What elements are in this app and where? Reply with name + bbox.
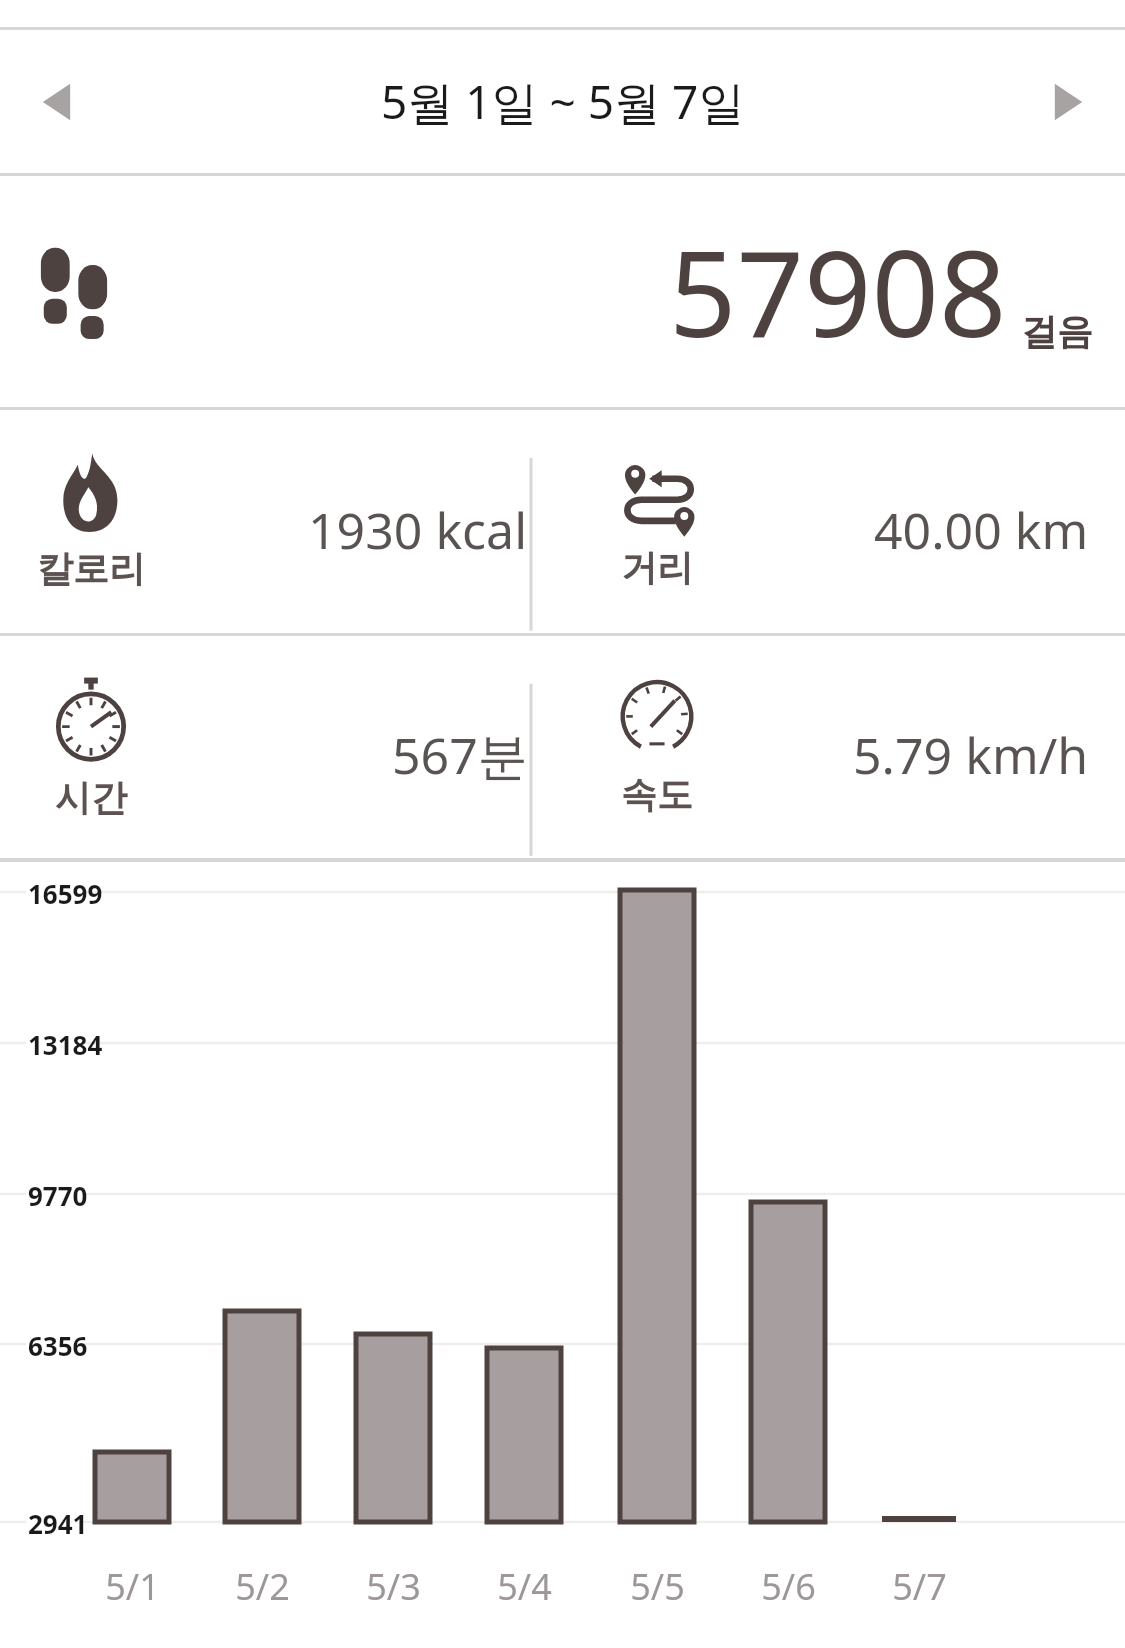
- staticText: 시간: [55, 775, 127, 820]
- staticText: 1930 kcal: [308, 496, 528, 564]
- staticText: 40.00 km: [874, 496, 1089, 564]
- staticText: 13184: [28, 1027, 103, 1062]
- staticText: 속도: [621, 772, 693, 817]
- staticText: 5월 1일 ~ 5월 7일: [381, 70, 745, 133]
- staticText: 5/1: [105, 1562, 160, 1611]
- button[interactable]: 속도: [562, 636, 1125, 858]
- staticText: 57908: [669, 211, 1007, 372]
- staticText: 9770: [28, 1178, 88, 1213]
- staticText: 2941: [28, 1506, 88, 1541]
- staticText: 칼로리: [37, 546, 145, 591]
- button[interactable]: Next week: [1029, 64, 1105, 140]
- staticText: 5/6: [761, 1562, 816, 1611]
- button[interactable]: 칼로리: [0, 410, 562, 633]
- staticText: 5/7: [892, 1562, 947, 1611]
- staticText: 5/4: [497, 1562, 552, 1611]
- staticText: 5/2: [235, 1562, 290, 1611]
- button[interactable]: 거리: [562, 410, 1125, 633]
- button[interactable]: Previous week: [20, 64, 96, 140]
- staticText: 걸음: [1021, 309, 1093, 354]
- staticText: 5/3: [366, 1562, 421, 1611]
- staticText: 5.79 km/h: [853, 721, 1089, 789]
- staticText: 16599: [28, 876, 103, 911]
- staticText: 567분: [392, 721, 528, 789]
- staticText: 5/5: [630, 1562, 685, 1611]
- button[interactable]: 시간: [0, 636, 562, 858]
- button[interactable]: 57908: [0, 176, 1125, 407]
- staticText: 거리: [621, 545, 693, 590]
- staticText: 6356: [28, 1328, 88, 1363]
